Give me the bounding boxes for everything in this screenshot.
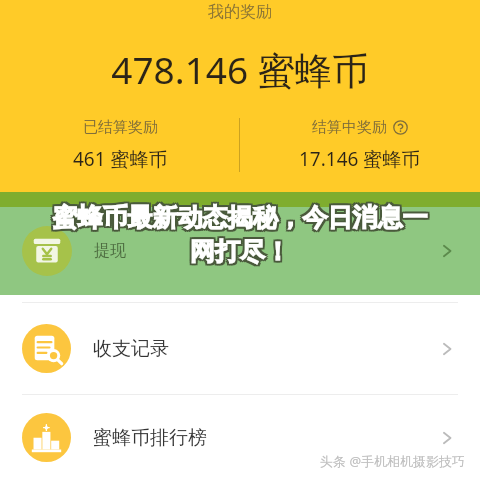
staticText: 蜜蜂币最新动态揭秘，今日消息一网打尽！ bbox=[44, 204, 436, 270]
button[interactable]: 提现 bbox=[0, 207, 480, 295]
staticText: 收支记录 bbox=[93, 337, 169, 361]
staticText: 结算中奖励 bbox=[312, 118, 387, 137]
staticText: 蜜蜂币最新动态揭秘，今日消息一网打尽！ bbox=[42, 202, 434, 268]
button[interactable]: Help about pending rewards bbox=[393, 120, 408, 135]
staticText: 蜜蜂币最新动态揭秘，今日消息一网打尽！ bbox=[46, 202, 438, 268]
staticText: 蜜蜂币排行榜 bbox=[93, 426, 207, 450]
button[interactable]: 收支记录 bbox=[0, 303, 480, 394]
staticText: 蜜蜂币最新动态揭秘，今日消息一网打尽！ bbox=[44, 202, 436, 268]
staticText: 461 蜜蜂币 bbox=[73, 146, 168, 172]
staticText: 提现 bbox=[94, 241, 126, 261]
staticText: 已结算奖励 bbox=[83, 118, 158, 137]
staticText: 蜜蜂币最新动态揭秘，今日消息一网打尽！ bbox=[44, 200, 436, 266]
staticText: 蜜蜂币最新动态揭秘，今日消息一网打尽！ bbox=[46, 204, 438, 270]
staticText: 蜜蜂币最新动态揭秘，今日消息一网打尽！ bbox=[46, 200, 438, 266]
staticText: 头条 @手机相机摄影技巧 bbox=[320, 452, 466, 470]
button[interactable]: 蜜蜂币排行榜 bbox=[0, 395, 480, 480]
staticText: 478.146 蜜蜂币 bbox=[111, 44, 369, 95]
staticText: 17.146 蜜蜂币 bbox=[299, 146, 421, 172]
staticText: 我的奖励 bbox=[208, 2, 272, 22]
staticText: 蜜蜂币最新动态揭秘，今日消息一网打尽！ bbox=[42, 204, 434, 270]
staticText: 蜜蜂币最新动态揭秘，今日消息一网打尽！ bbox=[42, 200, 434, 266]
